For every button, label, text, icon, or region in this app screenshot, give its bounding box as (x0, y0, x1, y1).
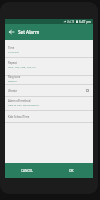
button[interactable]: Vibrate (5, 85, 93, 96)
staticText: Vibrate (8, 89, 18, 93)
staticText: Default (8, 79, 17, 82)
staticText: Set Alarm (18, 29, 40, 35)
staticText: 6:47 pm (79, 20, 92, 24)
staticText: Alarm off method (8, 99, 31, 103)
staticText: VoLTE (67, 20, 75, 24)
staticText: OK (69, 169, 74, 173)
staticText: Time (8, 46, 15, 50)
staticText: Mon, Tue, Wed, Thu, Fri (8, 65, 36, 68)
staticText: Repeat (8, 61, 17, 65)
button[interactable]: CANCEL (5, 163, 49, 178)
button[interactable]: OK (49, 163, 93, 178)
staticText: 01:00 PM (8, 50, 19, 53)
button[interactable]: Kids School Time (5, 111, 93, 122)
button[interactable]: Repeat (5, 58, 93, 75)
staticText: Ring tone (8, 75, 21, 79)
button[interactable]: Navigate up (5, 24, 17, 40)
button[interactable]: Ring tone (5, 76, 93, 84)
button[interactable]: Time (5, 40, 93, 57)
button[interactable]: Alarm off method (5, 97, 93, 110)
staticText: How to turn off the alarm? (8, 103, 39, 106)
staticText: Kids School Time (8, 115, 30, 119)
staticText: CANCEL (21, 169, 33, 173)
